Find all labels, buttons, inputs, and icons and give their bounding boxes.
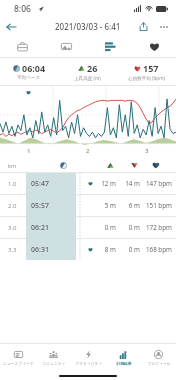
staticText: 26 bbox=[87, 62, 98, 74]
staticText: 172 bpm bbox=[142, 223, 172, 232]
button[interactable]: 3.0 bbox=[0, 217, 176, 238]
button[interactable]: 計測結果 bbox=[106, 344, 141, 371]
staticText: km bbox=[8, 162, 17, 169]
staticText: 2.0 bbox=[8, 202, 17, 210]
button[interactable]: 1.0 bbox=[0, 173, 176, 194]
staticText: プロフィール bbox=[147, 361, 171, 366]
staticText: 8:06 bbox=[14, 3, 31, 15]
staticText: 1.0 bbox=[8, 180, 17, 188]
button[interactable]: 06:04 bbox=[0, 58, 58, 85]
staticText: 12 m bbox=[96, 179, 116, 188]
staticText: 心拍数平均 (bpm) bbox=[128, 75, 165, 81]
staticText: 0 m bbox=[120, 223, 140, 232]
staticText: 05:57 bbox=[31, 201, 49, 211]
staticText: 0 m bbox=[120, 245, 140, 254]
button[interactable]: プロフィール bbox=[141, 344, 176, 371]
staticText: 168 bpm bbox=[142, 245, 172, 254]
staticText: 06:31 bbox=[31, 245, 49, 255]
button[interactable]: Back bbox=[0, 17, 22, 36]
staticText: 平均ペース bbox=[17, 75, 41, 81]
button[interactable]: Favorite bbox=[132, 36, 176, 57]
button[interactable]: 3.3 bbox=[0, 239, 176, 260]
button[interactable]: コミュニティ bbox=[36, 344, 71, 371]
button[interactable]: アクティビティ bbox=[71, 344, 106, 371]
button[interactable]: 2.0 bbox=[0, 195, 176, 216]
staticText: 157 bbox=[143, 62, 159, 74]
staticText: 147 bpm bbox=[142, 179, 172, 188]
button[interactable]: Splits bbox=[88, 36, 132, 57]
staticText: 151 bpm bbox=[142, 201, 172, 210]
staticText: 3 bbox=[145, 147, 149, 155]
staticText: 05:47 bbox=[31, 179, 49, 189]
button[interactable]: ニュースフィード bbox=[0, 344, 36, 371]
button[interactable]: 26 bbox=[58, 58, 117, 85]
staticText: 2 bbox=[86, 147, 90, 155]
button[interactable]: Summary bbox=[0, 36, 44, 57]
staticText: 上昇高度 (m) bbox=[74, 75, 101, 81]
staticText: 06:04 bbox=[22, 62, 46, 74]
staticText: コミュニティ bbox=[42, 361, 66, 366]
staticText: 計測結果 bbox=[116, 361, 132, 366]
staticText: 14 m bbox=[120, 179, 140, 188]
staticText: 06:21 bbox=[31, 223, 49, 233]
staticText: ニュースフィード bbox=[3, 361, 34, 366]
staticText: 6 m bbox=[120, 201, 140, 210]
staticText: 1 bbox=[27, 147, 31, 155]
button[interactable]: Photos bbox=[44, 36, 88, 57]
staticText: 2021/03/03 - 6:41 bbox=[55, 21, 121, 32]
button[interactable]: More options bbox=[154, 17, 174, 36]
button[interactable]: 157 bbox=[117, 58, 176, 85]
staticText: 8 m bbox=[96, 245, 116, 254]
button[interactable]: Share bbox=[132, 17, 154, 36]
staticText: 3.3 bbox=[8, 246, 17, 254]
staticText: 0 m bbox=[96, 223, 116, 232]
staticText: アクティビティ bbox=[75, 361, 103, 366]
staticText: 5 m bbox=[96, 201, 116, 210]
staticText: 3.0 bbox=[8, 224, 17, 232]
